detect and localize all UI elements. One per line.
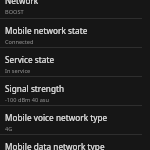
staticText: BOOST [5, 8, 24, 14]
staticText: 4G [5, 125, 13, 133]
button[interactable]: Mobile voice network type [0, 106, 150, 134]
staticText: Service state [5, 54, 55, 65]
staticText: Signal strength [5, 83, 65, 94]
staticText: -100 dBm 40 asu [5, 96, 50, 104]
staticText: Connected [5, 38, 34, 46]
staticText: Mobile data network type [5, 141, 105, 150]
staticText: Mobile network state [5, 25, 88, 36]
staticText: Network [5, 0, 39, 6]
staticText: Mobile voice network type [5, 112, 108, 123]
button[interactable]: Mobile network state [0, 19, 150, 47]
button[interactable]: Signal strength [0, 77, 150, 105]
button[interactable]: Mobile data network type [0, 135, 150, 150]
button[interactable]: Service state [0, 48, 150, 76]
staticText: In service [5, 67, 31, 75]
button[interactable]: Network [0, 0, 150, 19]
